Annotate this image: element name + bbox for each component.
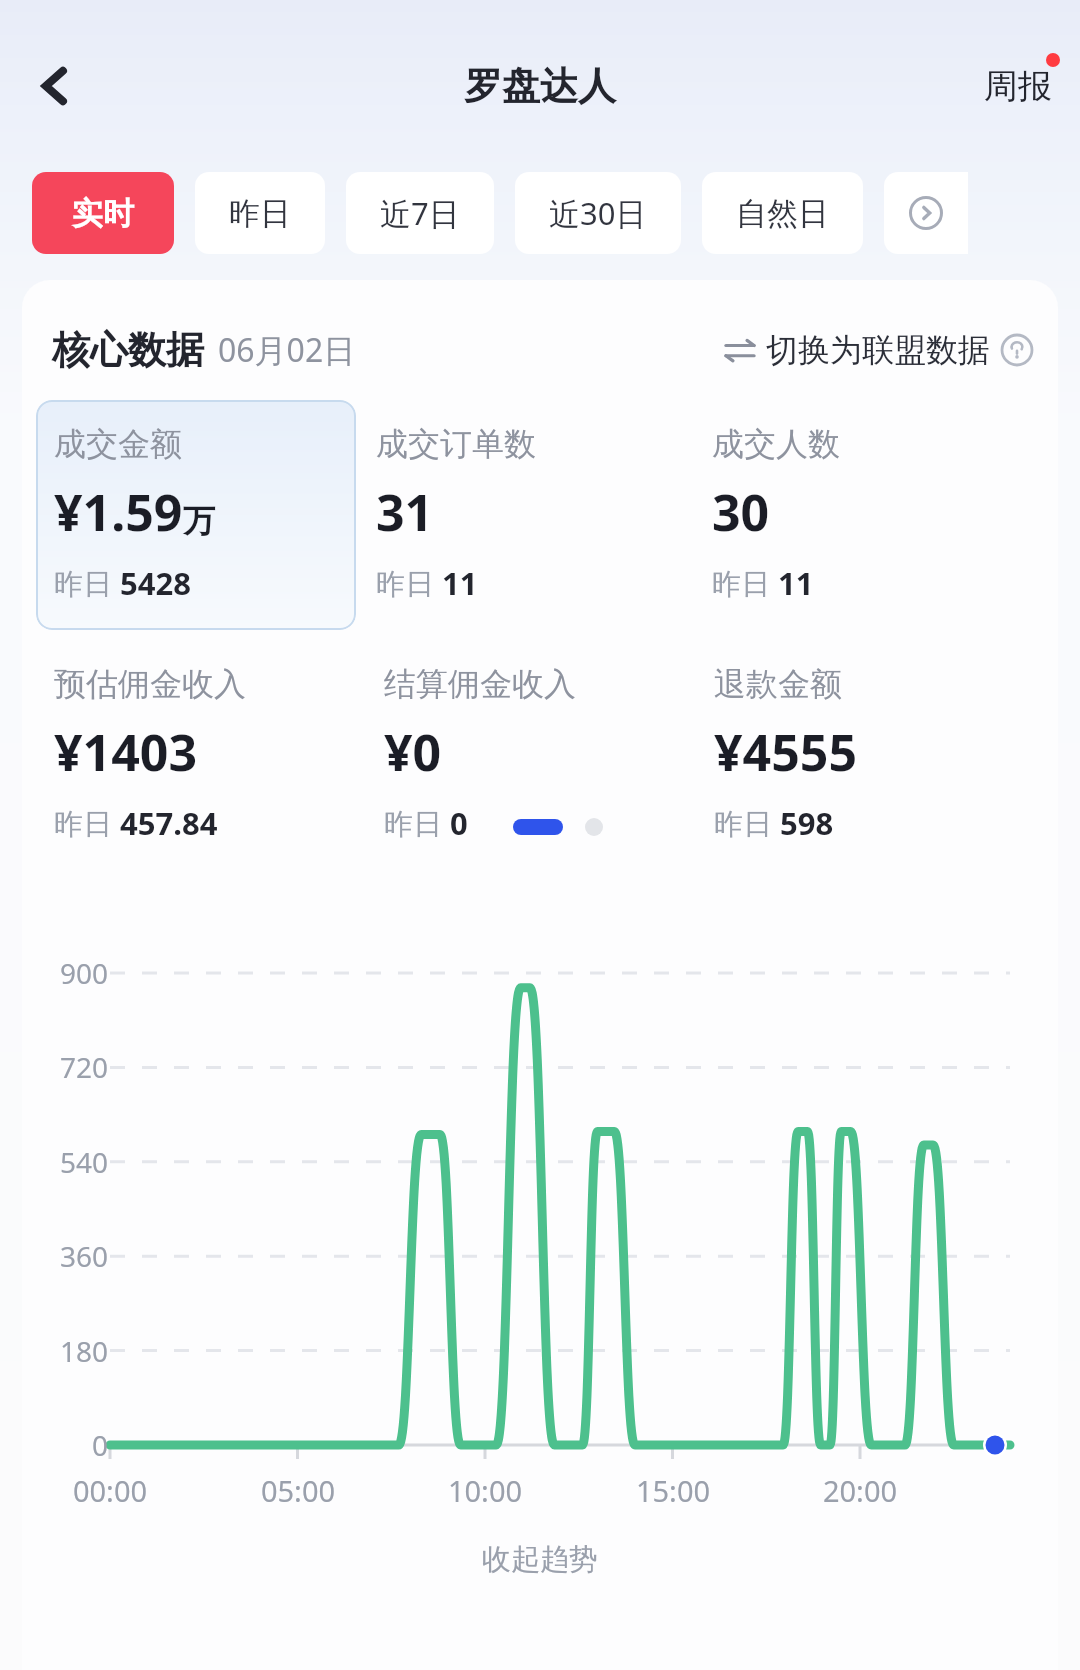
button[interactable]: 退款金额 (714, 664, 1044, 844)
staticText: 11 (778, 562, 814, 604)
staticText: 实时 (72, 194, 134, 233)
staticText: 罗盘达人 (464, 62, 616, 110)
staticText: 180 (46, 1332, 108, 1370)
staticText: 31 (376, 478, 434, 546)
button[interactable]: 近7日 (346, 172, 494, 254)
staticText: 成交订单数 (376, 424, 536, 464)
staticText: 周报 (984, 65, 1052, 108)
staticText: 540 (46, 1143, 108, 1181)
staticText: 06月02日 (218, 328, 356, 372)
staticText: 退款金额 (714, 664, 842, 704)
staticText: ¥0 (384, 718, 442, 786)
staticText: 20:00 (800, 1471, 920, 1510)
button[interactable]: 收起趋势 (470, 1537, 610, 1582)
button[interactable]: 昨日 (195, 172, 325, 254)
staticText: 昨日 (54, 563, 120, 603)
button[interactable]: 成交金额 (36, 400, 356, 630)
staticText: 10:00 (425, 1471, 545, 1510)
staticText: 457.84 (120, 802, 218, 844)
staticText: ¥4555 (714, 718, 857, 786)
staticText: 昨日 (229, 194, 291, 233)
staticText: 0 (450, 802, 468, 844)
staticText: 收起趋势 (482, 1541, 598, 1578)
staticText: 15:00 (613, 1471, 733, 1510)
staticText: 核心数据 (52, 326, 204, 374)
staticText: 昨日 (376, 563, 442, 603)
staticText: 近7日 (380, 192, 460, 234)
button[interactable]: 实时 (32, 172, 174, 254)
staticText: 成交人数 (712, 424, 840, 464)
button[interactable]: 预估佣金收入 (54, 664, 384, 844)
button[interactable]: 结算佣金收入 (384, 664, 714, 844)
staticText: 结算佣金收入 (384, 664, 576, 704)
staticText: 30 (712, 478, 770, 546)
staticText: 11 (442, 562, 478, 604)
button[interactable]: Back (20, 51, 90, 121)
button[interactable]: 成交订单数 (376, 424, 708, 604)
staticText: 昨日 (714, 803, 780, 843)
staticText: ¥1403 (54, 718, 197, 786)
staticText: 0 (46, 1426, 108, 1464)
button[interactable]: 自然日 (702, 172, 863, 254)
staticText: 万 (183, 501, 215, 541)
staticText: 5428 (120, 562, 191, 604)
staticText: 360 (46, 1237, 108, 1275)
button[interactable]: 近30日 (515, 172, 681, 254)
staticText: 900 (46, 954, 108, 992)
staticText: 598 (780, 802, 834, 844)
staticText: 昨日 (54, 803, 120, 843)
button[interactable]: 切换为联盟数据 (724, 324, 1034, 376)
staticText: 昨日 (712, 563, 778, 603)
button[interactable]: 成交人数 (712, 424, 1044, 604)
staticText: 成交金额 (54, 424, 182, 464)
staticText: 预估佣金收入 (54, 664, 246, 704)
staticText: 切换为联盟数据 (766, 330, 990, 370)
staticText: 昨日 (384, 803, 450, 843)
button[interactable]: 周报 (980, 55, 1056, 118)
staticText: 05:00 (238, 1471, 358, 1510)
button[interactable]: More date ranges (884, 172, 968, 254)
staticText: 近30日 (549, 192, 647, 234)
staticText: 00:00 (50, 1471, 170, 1510)
staticText: ¥1.59 (54, 478, 183, 546)
staticText: 自然日 (736, 194, 829, 233)
staticText: 720 (46, 1048, 108, 1086)
